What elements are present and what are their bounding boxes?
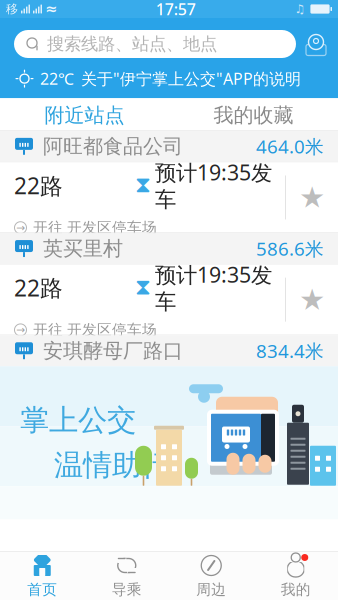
staticText: 预计19:35发车 [155,260,272,315]
staticText: 附近站点 [44,103,124,128]
button[interactable]: 附近站点 [0,98,169,130]
staticText: ≈ [45,1,57,17]
staticText: 我的收藏 [213,103,293,128]
button[interactable]: 搜索线路、站点、地点 [14,30,296,58]
button[interactable]: 安琪酵母厂路口 [0,335,338,366]
staticText: 阿旺都食品公司 [43,134,183,159]
staticText: 834.4米 [256,338,324,363]
staticText: 22路 [14,170,63,200]
button[interactable]: 22℃ [0,68,338,98]
staticText: → [16,222,25,234]
staticText: 掌上公交 [20,402,136,438]
button[interactable]: 周边 [169,552,253,600]
button[interactable]: 我的收藏 [169,98,338,130]
staticText: 我的 [281,580,311,598]
staticText: 22℃ [40,68,74,89]
staticText: → [16,324,25,336]
staticText: ⧗ [135,277,151,299]
staticText: 17:57 [156,0,196,20]
button[interactable]: 阿旺都食品公司 [0,131,338,162]
staticText: 关于"伊宁掌上公交"APP的说明 [81,68,301,89]
button[interactable]: 掌上公交 [0,366,338,519]
button[interactable]: 22路 [0,265,338,335]
button[interactable]: 定位 [296,27,336,61]
staticText: 586.6米 [256,236,324,261]
button[interactable]: 导乘 [84,552,169,600]
staticText: 开往 开发区停车场 [33,321,157,339]
staticText: 周边 [196,580,226,598]
staticText: ⧗ [135,174,151,196]
button[interactable]: 首页 [0,552,84,600]
staticText: 464.0米 [256,134,324,159]
button[interactable]: 收藏 [286,167,338,227]
staticText: 搜索线路、站点、地点 [47,33,217,55]
button[interactable]: 英买里村 [0,233,338,264]
staticText: 首页 [27,580,57,598]
button[interactable]: 收藏 [286,270,338,330]
staticText: 英买里村 [43,236,123,261]
staticText: 开往 开发区停车场 [33,219,157,237]
staticText: ♫ [294,2,305,16]
button[interactable]: 22路 [0,162,338,232]
button[interactable]: 我的 [253,552,338,600]
staticText: ★ [299,181,325,214]
staticText: 移 [6,2,18,16]
staticText: 预计19:35发车 [155,158,272,213]
staticText: ★ [299,283,325,316]
staticText: 导乘 [112,580,142,598]
staticText: 22路 [14,273,63,303]
staticText: 温情助行 [54,447,170,483]
staticText: 安琪酵母厂路口 [43,338,183,363]
